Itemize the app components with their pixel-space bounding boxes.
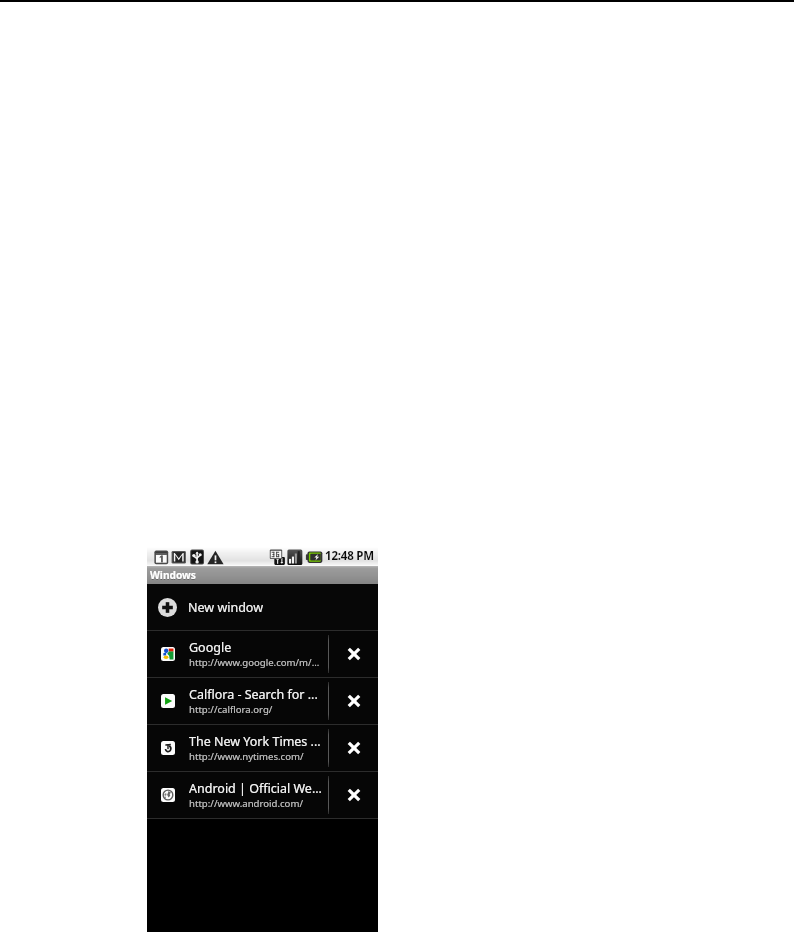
staticText: http://www.google.com/m/... [189, 656, 320, 669]
staticText: Google [189, 639, 232, 656]
staticText: http://www.nytimes.com/ [189, 750, 304, 763]
staticText: http://www.android.com/ [189, 797, 303, 810]
staticText: Calflora - Search for ... [189, 686, 318, 703]
staticText: Windows [150, 568, 196, 582]
button[interactable]: Close window [329, 678, 378, 724]
staticText: Windows [150, 569, 196, 583]
button[interactable]: Android | Official We... [147, 772, 328, 818]
button[interactable]: Close window [329, 725, 378, 771]
button[interactable]: Close window [329, 772, 378, 818]
button[interactable]: Calflora - Search for ... [147, 678, 328, 724]
button[interactable]: New window [147, 584, 378, 630]
staticText: http://calflora.org/ [189, 703, 273, 716]
staticText: Android | Official We... [189, 780, 322, 797]
button[interactable]: Close window [329, 631, 378, 677]
staticText: 12:48 PM [325, 548, 374, 564]
button[interactable]: The New York Times ... [147, 725, 328, 771]
staticText: The New York Times ... [189, 733, 321, 750]
button[interactable]: Google [147, 631, 328, 677]
staticText: New window [188, 599, 263, 616]
